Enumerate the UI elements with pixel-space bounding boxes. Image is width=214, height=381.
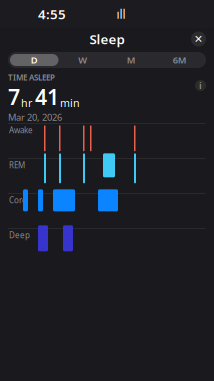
button[interactable]: M (107, 54, 155, 66)
button[interactable]: 6M (155, 54, 204, 66)
staticText: i (199, 79, 202, 92)
staticText: Core (9, 195, 27, 205)
staticText: ıll (116, 6, 125, 22)
staticText: 6M (173, 54, 187, 66)
staticText: M (127, 54, 136, 66)
staticText: Sleep (89, 30, 124, 48)
staticText: 4:55 (38, 5, 66, 23)
staticText: TIME ASLEEP (8, 72, 55, 83)
staticText: ✕ (194, 33, 203, 45)
button[interactable]: W (58, 54, 107, 66)
staticText: Mar 20, 2026 (8, 111, 62, 123)
staticText: Deep (9, 230, 30, 240)
staticText: D (31, 54, 38, 66)
staticText: hr (21, 96, 32, 110)
staticText: 7 (8, 83, 20, 111)
staticText: 41 (35, 83, 59, 111)
button[interactable]: Close (191, 31, 206, 46)
staticText: REM (9, 160, 25, 170)
staticText: Awake (9, 125, 33, 135)
button[interactable]: Info (195, 80, 206, 91)
button[interactable]: D (10, 54, 58, 66)
staticText: min (60, 96, 80, 110)
staticText: W (78, 54, 87, 66)
